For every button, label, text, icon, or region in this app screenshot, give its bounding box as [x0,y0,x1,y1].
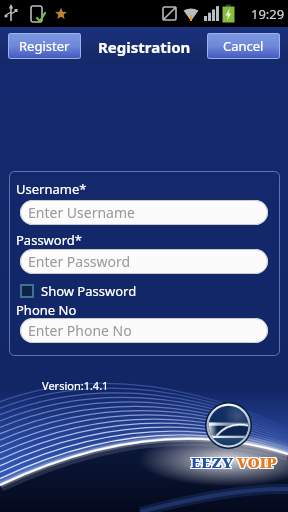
staticText: Version:1.4.1 [42,378,109,393]
button[interactable]: Enter Password [20,249,268,274]
staticText: EEZY VOIP [191,452,277,471]
staticText: EEZY VOIP [190,452,276,471]
staticText: Registration [98,37,191,57]
staticText: EEZY VOIP [190,453,276,472]
staticText: 19:29 [251,5,285,23]
staticText: EEZY VOIP [192,453,278,472]
staticText: Enter Password [28,252,131,271]
staticText: Username* [16,180,87,198]
staticText: EEZY VOIP [192,452,278,471]
button[interactable]: Show Password [20,282,137,300]
staticText: EEZY VOIP [190,451,276,470]
staticText: Password* [16,231,82,249]
button[interactable]: Cancel [207,33,280,59]
staticText: Cancel [223,37,264,55]
staticText: Register [19,37,70,55]
staticText: Phone No [16,301,77,319]
staticText: EEZY VOIP [191,451,277,470]
staticText: Enter Phone No [28,321,132,340]
staticText: Show Password [41,282,137,300]
button[interactable]: Enter Username [20,200,268,225]
staticText: Enter Username [28,203,135,222]
button[interactable]: Enter Phone No [20,318,268,343]
button[interactable]: Register [8,33,81,59]
staticText: EEZY VOIP [191,453,277,472]
staticText: EEZY VOIP [192,451,278,470]
